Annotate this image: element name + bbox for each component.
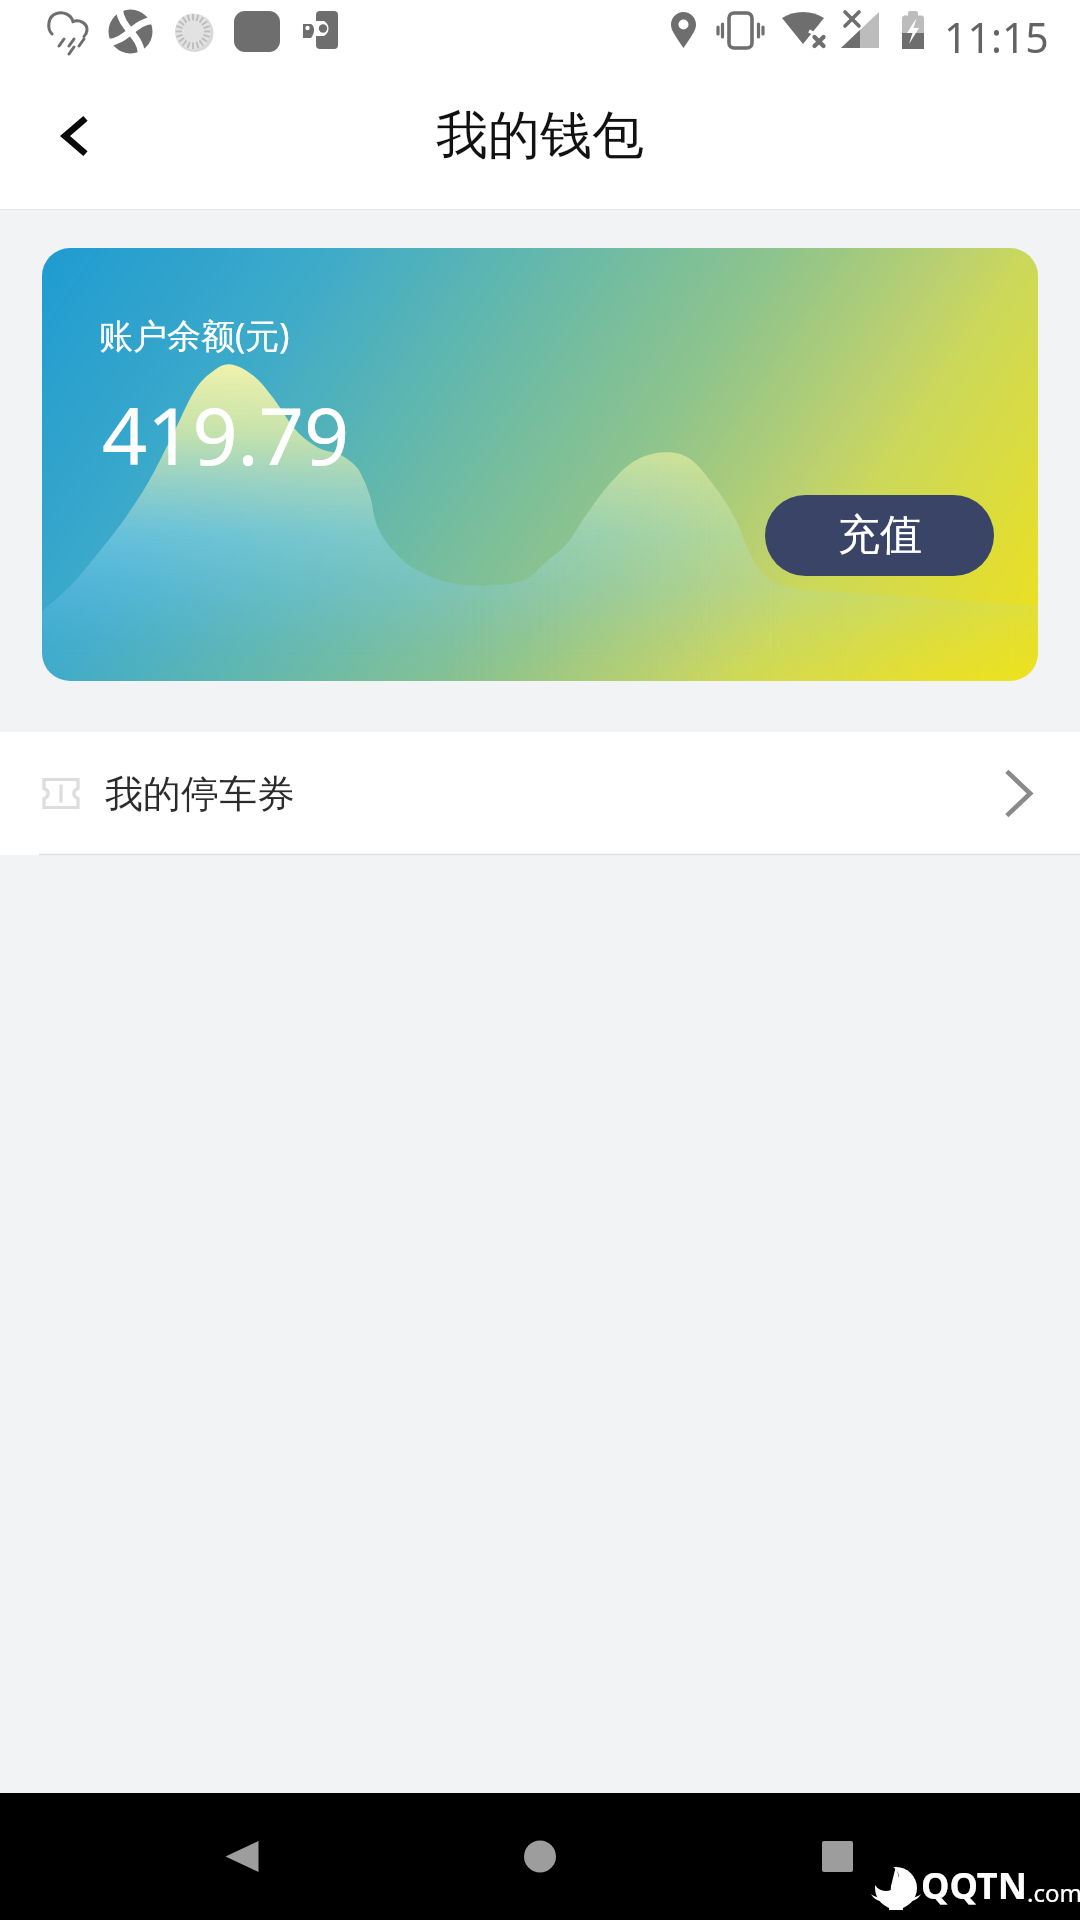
staticText: 我的停车券 <box>105 770 295 818</box>
staticText: .com <box>1027 1876 1080 1909</box>
button[interactable]: 我的停车券 <box>0 732 1080 855</box>
staticText: 账户余额(元) <box>99 312 290 358</box>
staticText: 充值 <box>838 509 922 562</box>
staticText: 我的钱包 <box>436 103 644 169</box>
button[interactable]: Back <box>160 1793 340 1920</box>
button[interactable]: Home <box>450 1793 630 1920</box>
staticText: QQTN <box>921 1861 1027 1910</box>
button[interactable]: Recent apps <box>748 1793 928 1920</box>
button[interactable]: Back <box>0 81 110 191</box>
button[interactable]: 充值 <box>765 495 994 576</box>
staticText: 11:15 <box>944 9 1049 65</box>
staticText: 419.79 <box>102 381 350 489</box>
button[interactable]: 账户余额(元) <box>42 248 1038 681</box>
